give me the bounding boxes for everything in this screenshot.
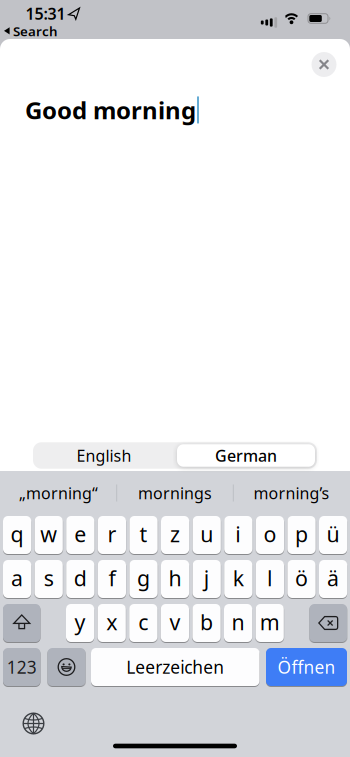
button[interactable]: ö — [287, 560, 316, 598]
button[interactable]: w — [35, 516, 63, 554]
staticText: 15:31 — [25, 3, 65, 24]
button[interactable]: n — [224, 604, 252, 642]
staticText: q — [11, 520, 24, 548]
button[interactable]: Delete — [309, 604, 347, 642]
staticText: f — [108, 564, 115, 592]
button[interactable]: r — [98, 516, 126, 554]
button[interactable]: Close — [311, 52, 336, 77]
button[interactable]: d — [66, 560, 94, 598]
staticText: u — [200, 520, 213, 548]
button[interactable]: Shift — [3, 604, 40, 642]
button[interactable]: ü — [319, 516, 347, 554]
staticText: i — [235, 520, 241, 548]
staticText: n — [232, 608, 245, 636]
staticText: Search — [13, 22, 58, 40]
button[interactable]: Search — [4, 22, 58, 40]
button[interactable]: x — [98, 604, 126, 642]
staticText: r — [107, 520, 116, 548]
staticText: ü — [327, 520, 340, 548]
button[interactable]: l — [256, 560, 284, 598]
staticText: s — [44, 564, 54, 592]
staticText: g — [137, 564, 150, 592]
staticText: x — [106, 608, 117, 636]
staticText: t — [139, 520, 147, 548]
button[interactable]: m — [256, 604, 284, 642]
button[interactable]: Next keyboard — [22, 712, 44, 734]
staticText: d — [74, 564, 87, 592]
button[interactable]: a — [3, 560, 31, 598]
staticText: Leerzeichen — [126, 655, 224, 678]
button[interactable]: Numbers — [3, 648, 40, 686]
staticText: a — [11, 564, 23, 592]
button[interactable]: ä — [319, 560, 347, 598]
button[interactable]: z — [161, 516, 189, 554]
button[interactable]: Leerzeichen — [91, 648, 259, 686]
button[interactable]: f — [98, 560, 126, 598]
button[interactable]: Öffnen — [266, 648, 347, 686]
button[interactable]: v — [161, 604, 189, 642]
button[interactable]: i — [224, 516, 252, 554]
staticText: w — [40, 520, 57, 548]
staticText: y — [75, 608, 86, 636]
staticText: v — [169, 608, 180, 636]
staticText: l — [267, 564, 273, 592]
button[interactable]: c — [129, 604, 157, 642]
button[interactable]: j — [193, 560, 221, 598]
button[interactable]: o — [256, 516, 284, 554]
button[interactable]: mornings — [117, 471, 233, 515]
staticText: English — [76, 445, 131, 466]
button[interactable]: y — [66, 604, 94, 642]
button[interactable]: t — [129, 516, 158, 554]
staticText: k — [233, 564, 244, 592]
staticText: 123 — [7, 655, 37, 678]
button[interactable]: g — [129, 560, 158, 598]
button[interactable]: p — [287, 516, 316, 554]
button[interactable]: h — [161, 560, 189, 598]
staticText: Good morning — [25, 94, 196, 126]
button[interactable]: u — [193, 516, 221, 554]
staticText: Öffnen — [277, 655, 335, 678]
button[interactable]: b — [192, 604, 221, 642]
staticText: e — [74, 520, 86, 548]
staticText: p — [295, 520, 308, 548]
button[interactable]: q — [3, 516, 31, 554]
staticText: ö — [295, 564, 308, 592]
staticText: „morning“ — [19, 482, 98, 504]
button[interactable]: English — [34, 442, 174, 469]
staticText: ä — [327, 564, 339, 592]
button[interactable]: s — [35, 560, 63, 598]
button[interactable]: e — [66, 516, 94, 554]
staticText: z — [170, 520, 180, 548]
button[interactable]: Emoji — [47, 648, 85, 686]
staticText: c — [138, 608, 148, 636]
button[interactable]: German — [175, 442, 317, 469]
staticText: b — [200, 608, 213, 636]
staticText: German — [215, 445, 277, 466]
staticText: j — [204, 564, 210, 592]
button[interactable]: „morning“ — [0, 471, 117, 515]
button[interactable]: morning’s — [233, 471, 350, 515]
staticText: m — [260, 608, 280, 636]
staticText: h — [169, 564, 182, 592]
button[interactable]: k — [224, 560, 252, 598]
staticText: o — [263, 520, 276, 548]
staticText: mornings — [138, 482, 212, 504]
staticText: morning’s — [254, 482, 330, 504]
